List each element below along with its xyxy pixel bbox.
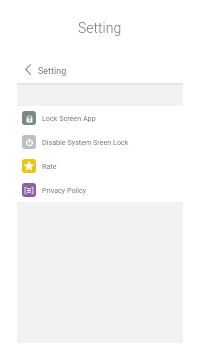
button[interactable]: Rate [17, 154, 183, 178]
staticText: Disable System Sreen Lock [42, 138, 129, 146]
button[interactable]: Privacy Policy [17, 178, 183, 202]
button[interactable]: Disable System Sreen Lock [17, 130, 183, 154]
staticText: Privacy Policy [42, 186, 87, 194]
staticText: Setting [38, 66, 67, 77]
staticText: Lock Screen App [42, 114, 96, 122]
staticText: Rate [42, 162, 57, 170]
button[interactable]: Back [21, 62, 35, 76]
staticText: Setting [78, 20, 122, 36]
button[interactable]: Lock Screen App [17, 106, 183, 130]
